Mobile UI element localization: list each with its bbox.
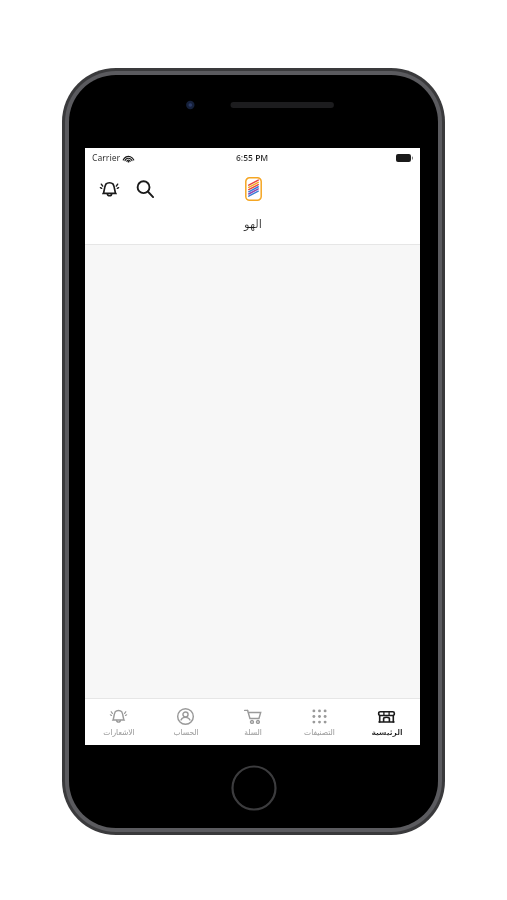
button[interactable]: Notifications (94, 174, 124, 204)
staticText: الحساب (173, 728, 199, 737)
button[interactable]: Search (130, 174, 160, 204)
staticText: التصنيفات (304, 728, 335, 737)
staticText: الاشعارات (103, 728, 135, 737)
button[interactable]: الهو (85, 210, 420, 244)
button[interactable]: التصنيفات (286, 699, 353, 745)
button[interactable]: Home button (231, 765, 277, 811)
staticText: Carrier (92, 152, 121, 164)
button[interactable]: الحساب (152, 699, 219, 745)
button[interactable]: الاشعارات (85, 699, 152, 745)
staticText: السلة (244, 728, 262, 737)
button[interactable]: App logo (240, 174, 266, 204)
button[interactable]: السلة (219, 699, 286, 745)
button[interactable]: الرئيسية (353, 699, 420, 745)
staticText: الرئيسية (371, 728, 403, 737)
staticText: الهو (244, 217, 262, 230)
staticText: 6:55 PM (236, 152, 269, 164)
